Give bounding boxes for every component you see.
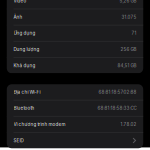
staticText: Khả dụng xyxy=(13,63,35,68)
staticText: 84,51 GB xyxy=(117,63,136,68)
staticText: Dung lượng xyxy=(13,47,39,52)
staticText: 1.78.02 xyxy=(120,122,136,127)
button[interactable]: Vi chương trình modem xyxy=(7,117,143,132)
staticText: 5,26 GB xyxy=(119,0,136,4)
staticText: Ứng dụng xyxy=(13,30,35,36)
staticText: SEID xyxy=(13,138,23,143)
button[interactable]: Video xyxy=(7,0,143,9)
button[interactable]: Dung lượng xyxy=(7,42,143,57)
button[interactable]: Ảnh xyxy=(7,9,143,25)
button[interactable]: Địa chỉ Wi-Fi xyxy=(7,84,143,100)
button[interactable]: Khả dụng xyxy=(7,58,143,73)
staticText: 31.075 xyxy=(121,14,136,20)
staticText: 71 xyxy=(131,30,136,36)
staticText: Bluetooth xyxy=(13,105,34,111)
staticText: 256 GB xyxy=(120,47,136,52)
staticText: Vi chương trình modem xyxy=(13,122,65,127)
button[interactable]: Ứng dụng xyxy=(7,25,143,41)
staticText: 68:81:18:58:33:CC xyxy=(97,105,136,111)
staticText: Video xyxy=(13,0,26,4)
button[interactable]: Bluetooth xyxy=(7,100,143,116)
staticText: 68:81:18:57:02:88 xyxy=(98,89,136,95)
staticText: Ảnh xyxy=(13,14,22,20)
staticText: Địa chỉ Wi-Fi xyxy=(13,89,40,95)
button[interactable]: SEID xyxy=(7,133,143,148)
